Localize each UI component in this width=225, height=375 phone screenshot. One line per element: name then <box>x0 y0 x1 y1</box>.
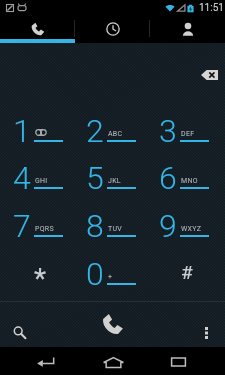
staticText: GHI <box>35 177 48 185</box>
button[interactable]: Call log tab <box>75 15 150 43</box>
button[interactable]: Backspace <box>193 60 225 90</box>
staticText: 0 <box>86 255 104 293</box>
button[interactable]: Dialer tab <box>0 15 75 43</box>
staticText: DEF <box>181 130 195 138</box>
button[interactable]: Contacts tab <box>150 15 225 43</box>
button[interactable]: * <box>3 249 76 297</box>
button[interactable]: 6 <box>149 153 222 201</box>
button[interactable]: 2 <box>76 106 149 153</box>
button[interactable]: 9 <box>149 201 222 249</box>
staticText: # <box>181 261 193 283</box>
button[interactable]: Search <box>2 317 36 347</box>
staticText: ABC <box>108 130 123 138</box>
staticText: 6 <box>159 159 177 197</box>
staticText: 9 <box>159 207 177 245</box>
staticText: * <box>34 262 47 295</box>
staticText: 2 <box>86 112 104 150</box>
staticText: 3 <box>159 112 177 150</box>
staticText: JKL <box>108 177 121 185</box>
staticText: WXYZ <box>181 225 202 233</box>
staticText: 4 <box>13 159 31 197</box>
staticText: 11:51 <box>199 2 224 14</box>
staticText: TUV <box>108 225 123 233</box>
button[interactable]: 4 <box>3 153 76 201</box>
staticText: + <box>108 273 113 281</box>
button[interactable]: 3 <box>149 106 222 153</box>
staticText: MNO <box>181 177 198 185</box>
button[interactable]: More options <box>191 318 221 348</box>
staticText: 7 <box>13 207 31 245</box>
button[interactable]: Recents <box>156 349 200 375</box>
button[interactable]: 5 <box>76 153 149 201</box>
button[interactable]: 7 <box>3 201 76 249</box>
staticText: 8 <box>86 207 104 245</box>
button[interactable]: Home <box>91 349 135 375</box>
staticText: 5 <box>86 159 104 197</box>
button[interactable]: 0 <box>76 249 149 297</box>
button[interactable]: 8 <box>76 201 149 249</box>
button[interactable]: Back <box>23 349 67 375</box>
staticText: PQRS <box>35 225 54 233</box>
button[interactable]: # <box>149 249 222 297</box>
button[interactable]: 1 <box>3 106 76 153</box>
button[interactable]: Call <box>68 303 158 345</box>
staticText: 1 <box>13 112 31 150</box>
